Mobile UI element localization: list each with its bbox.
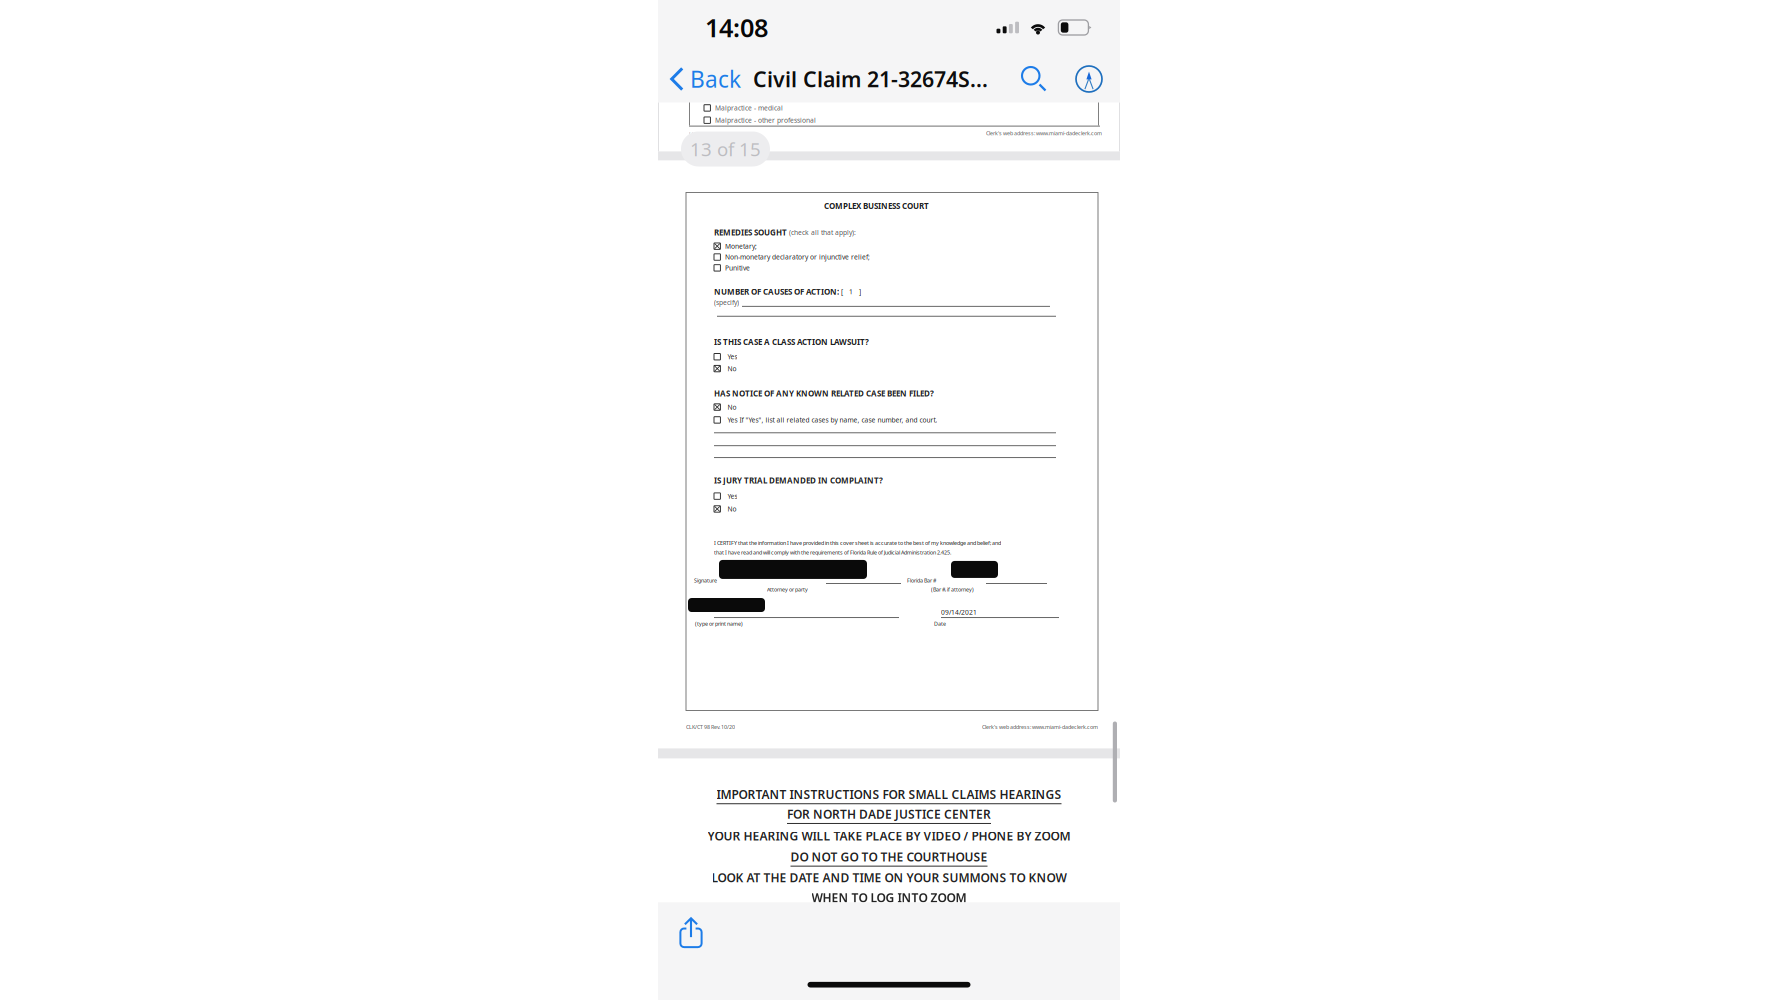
staticText: No [727,403,736,411]
staticText: Yes [727,492,737,501]
staticText: Florida Bar # [907,577,936,584]
staticText: Yes If "Yes", list all related cases by … [727,415,937,424]
staticText: CLK/CT 98 Rev. 10/20 [686,723,735,731]
staticText: (type or print name) [695,620,743,627]
staticText: IS JURY TRIAL DEMANDED IN COMPLAINT? [714,475,883,486]
staticText: 09/14/2021 [941,608,977,617]
staticText: Clerk's web address: www.miami-dadeclerk… [986,130,1102,137]
staticText: Malpractice - other professional [715,116,816,125]
button[interactable]: Back [658,58,745,100]
staticText: NUMBER OF CAUSES OF ACTION: [714,286,839,297]
staticText: Malpractice - medical [715,103,783,112]
button[interactable]: Search [1015,60,1053,98]
staticText: (specify) [714,298,739,307]
staticText: 14:08 [705,11,768,44]
staticText: No [727,364,736,373]
staticText: I CERTIFY that the information I have pr… [714,539,1001,546]
staticText: YOUR HEARING WILL TAKE PLACE BY VIDEO / … [707,828,1070,844]
staticText: Civil Claim 21-32674S... [753,65,988,93]
staticText: LOOK AT THE DATE AND TIME ON YOUR SUMMON… [711,870,1066,885]
staticText: Signature [694,577,717,584]
staticText: DO NOT GO TO THE COURTHOUSE [790,849,987,865]
staticText: Non-monetary declaratory or injunctive r… [725,253,870,261]
staticText: (Bar #, if attorney) [931,586,974,593]
staticText: CLK/CT 98 Rev. 10/20 [689,130,725,136]
staticText: COMPLEX BUSINESS COURT [824,200,929,211]
staticText: Attorney or party [767,586,808,593]
staticText: that I have read and will comply with th… [714,549,951,556]
staticText: IS THIS CASE A CLASS ACTION LAWSUIT? [714,337,869,347]
staticText: Monetary; [725,242,757,251]
staticText: Punitive [725,263,750,272]
staticText: WHEN TO LOG INTO ZOOM [811,890,966,905]
staticText: IMPORTANT INSTRUCTIONS FOR SMALL CLAIMS … [716,786,1061,802]
button[interactable]: Share [669,910,713,954]
staticText: Date [934,620,946,627]
staticText: Back [690,64,741,94]
staticText: Clerk's web address: www.miami-dadeclerk… [982,723,1098,731]
staticText: 13 of 15 [690,137,761,161]
staticText: [ 1 ] [839,287,861,296]
staticText: No [727,504,736,513]
button[interactable]: Markup [1070,60,1108,98]
staticText: (check all that apply): [787,228,856,237]
staticText: HAS NOTICE OF ANY KNOWN RELATED CASE BEE… [714,388,934,399]
staticText: FOR NORTH DADE JUSTICE CENTER [787,806,991,822]
staticText: Yes [727,352,737,361]
staticText: REMEDIES SOUGHT [714,227,787,238]
